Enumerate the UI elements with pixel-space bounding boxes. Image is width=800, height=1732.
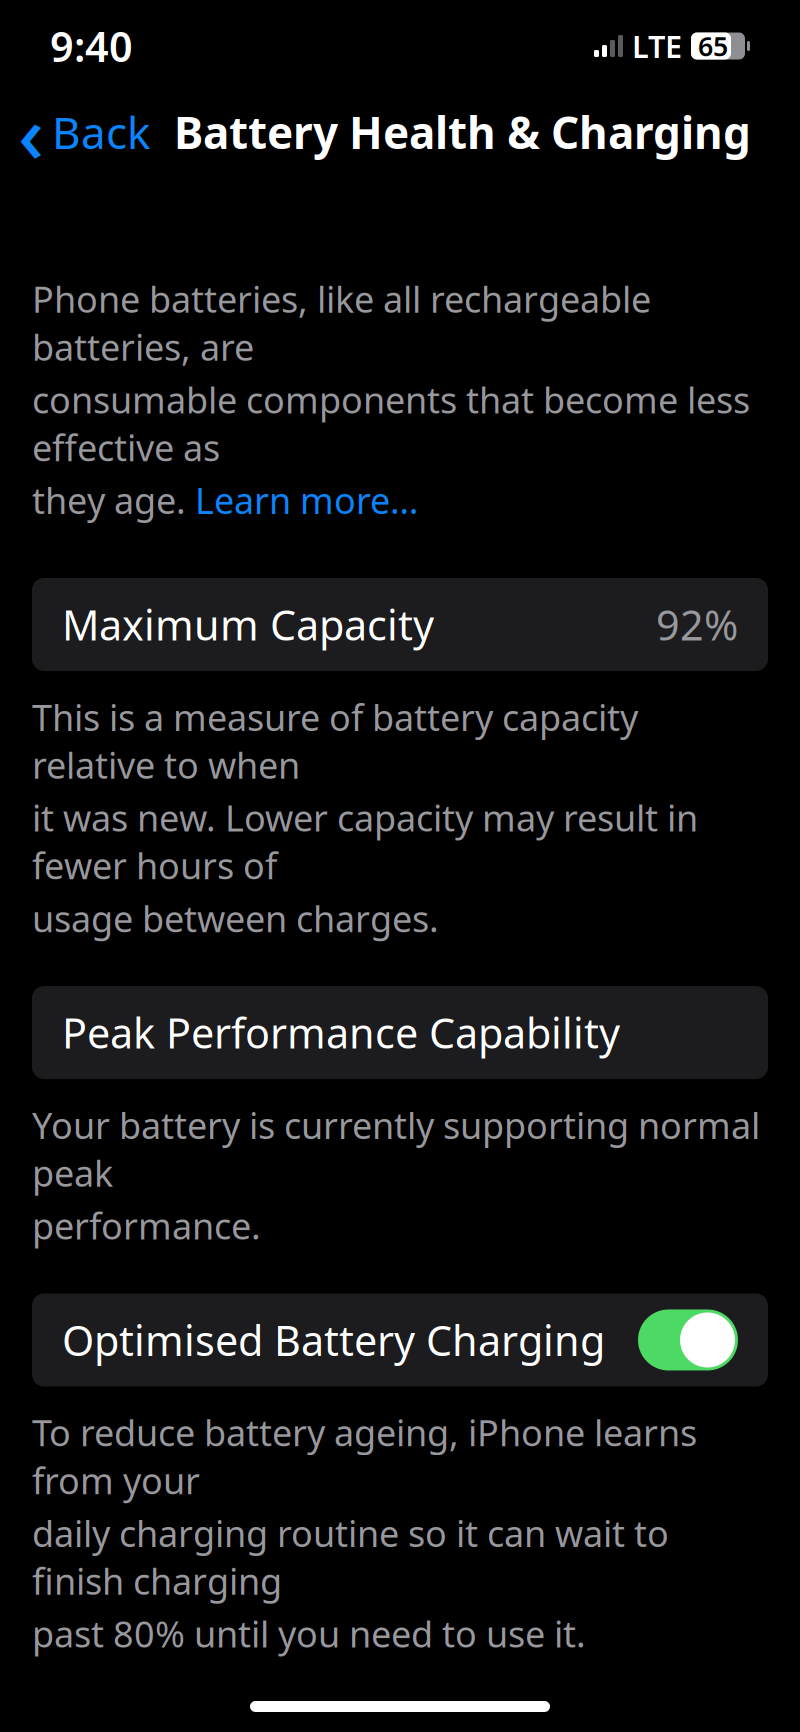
button[interactable]: Maximum Capacity [32,578,768,671]
staticText: past 80% until you need to use it. [32,1610,586,1657]
staticText: usage between charges. [32,894,439,942]
staticText: Your battery is currently supporting nor… [32,1101,760,1197]
staticText: performance. [32,1202,261,1249]
button[interactable]: Optimised Battery Charging [32,1293,768,1386]
staticText: Peak Performance Capability [62,1005,620,1060]
staticText: Learn more… [195,476,418,524]
staticText: Back [52,103,150,161]
staticText: they age. [32,476,195,524]
button[interactable]: ‹ [0,97,150,167]
button[interactable]: Peak Performance Capability [32,986,768,1079]
staticText: Battery Health & Charging [174,103,751,161]
staticText: Maximum Capacity [62,597,434,652]
staticText: Phone batteries, like all rechargeable b… [32,275,651,371]
staticText: Optimised Battery Charging [62,1312,605,1367]
staticText: ‹ [18,79,44,185]
staticText: 92% [656,597,738,652]
staticText: consumable components that become less e… [32,376,750,471]
staticText: 9:40 [50,19,133,73]
staticText: 65 [698,28,728,64]
staticText: This is a measure of battery capacity re… [32,693,638,789]
staticText: it was new. Lower capacity may result in… [32,794,698,889]
staticText: To reduce battery ageing, iPhone learns … [32,1408,697,1504]
staticText: LTE [632,26,682,66]
staticText: daily charging routine so it can wait to… [32,1509,669,1605]
